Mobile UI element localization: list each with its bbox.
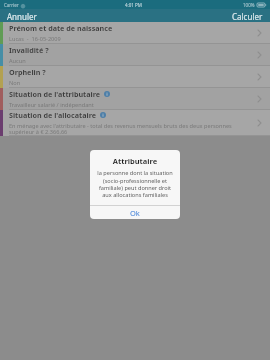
staticText: Calculer [232,11,263,20]
staticText: 100% [243,2,255,8]
staticText: En ménage avec l'attributaire - total de… [9,122,248,136]
staticText: Non [9,79,21,87]
staticText: la personne dont la situation (socio-pro… [96,169,174,199]
button[interactable]: Calculer [225,9,270,22]
button[interactable]: Prénom et date de naissance [0,22,270,44]
staticText: Annuler [7,11,37,20]
staticText: Attributaire [95,156,175,166]
button[interactable]: Ok [90,206,180,219]
other: Information [100,112,106,118]
button[interactable]: Annuler [0,9,44,22]
button[interactable]: Situation de l'attributaire [0,88,270,110]
staticText: Prénom et date de naissance [9,23,113,33]
button[interactable]: Situation de l'allocataire [0,110,270,136]
staticText: Ok [130,208,140,218]
staticText: 4:01 PM [125,2,142,8]
button[interactable]: Invalidité ? [0,44,270,66]
other: Information [104,91,110,97]
staticText: Aucun [9,57,26,65]
button[interactable]: Orphelin ? [0,66,270,88]
staticText: Carrier [4,2,19,8]
staticText: Lucas - 16-05-2009 [9,35,61,43]
staticText: Situation de l'attributaire [9,89,101,99]
staticText: Invalidité ? [9,45,49,55]
staticText: Travailleur salarié / indépendant [9,101,94,109]
staticText: Situation de l'allocataire [9,110,97,120]
staticText: Orphelin ? [9,67,46,77]
